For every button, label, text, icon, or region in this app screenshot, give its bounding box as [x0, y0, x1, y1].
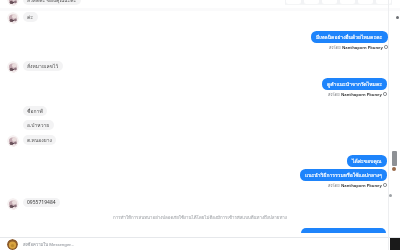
staticText: 0955719484	[27, 199, 56, 206]
staticText: มีเทคนิคอย่างอื่นด้วยไหมคะคะ	[316, 33, 383, 41]
button[interactable]: React	[376, 0, 391, 4]
button[interactable]: ต.หนองยาง	[23, 135, 56, 145]
staticText: ดูคำแนะนำจากวัดไหมคะ	[327, 80, 382, 88]
button[interactable]: มีเทคนิคอย่างอื่นด้วยไหมคะคะ	[311, 31, 388, 43]
staticText: Nanthaporn Pbuney	[342, 45, 383, 50]
staticText: Nanthaporn Pbuney	[341, 92, 382, 97]
staticText: ได้ค่ะขอบคุณ	[352, 157, 382, 165]
staticText: ส่งโดย	[329, 44, 342, 50]
button[interactable]: สวัสดีค่ะ ขอบคุณนะคะ	[23, 0, 81, 5]
staticText: ส่งโดย	[328, 91, 341, 97]
staticText: ส่งโดย	[328, 182, 341, 188]
button[interactable]: แนะนำวิธีการรวมหรือใช้แอปกลางๆ	[300, 169, 387, 181]
button[interactable]: สั่งหมายเลขไว้	[23, 61, 63, 71]
button[interactable]: ได้ค่ะขอบคุณ	[347, 155, 387, 167]
staticText: Nanthaporn Pbuney	[341, 183, 382, 188]
staticText: สวัสดีค่ะ ขอบคุณนะคะ	[27, 0, 77, 4]
staticText: แนะนำวิธีการรวมหรือใช้แอปกลางๆ	[305, 171, 382, 179]
staticText: ค่ะ	[27, 13, 34, 21]
button[interactable]: ค่ะ	[23, 12, 38, 22]
staticText: การทำให้การสนทนาอย่างปลอดภัยใช้งานได้โดย…	[113, 214, 287, 221]
button[interactable]: 0955719484	[23, 198, 60, 207]
button[interactable]: ชื่อกาฟ์	[23, 106, 47, 116]
staticText: สั่งหมายเลขไว้	[27, 62, 59, 70]
button[interactable]: อ.ป่าหวาย	[23, 120, 54, 130]
staticText: ต.หนองยาง	[27, 136, 52, 144]
staticText: ชื่อกาฟ์	[27, 107, 43, 115]
button[interactable]: ดูคำแนะนำจากวัดไหมคะ	[322, 78, 387, 90]
staticText: ส่งข้อความใน Messenger...	[23, 241, 74, 248]
staticText: อ.ป่าหวาย	[27, 121, 50, 129]
